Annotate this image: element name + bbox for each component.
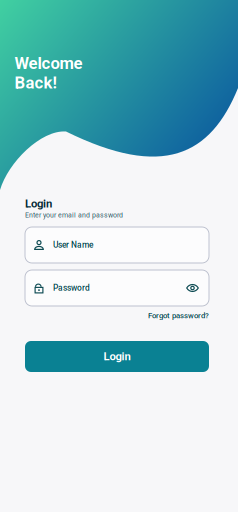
button[interactable]: Show password bbox=[186, 284, 199, 292]
staticText: User Name bbox=[53, 240, 93, 250]
staticText: Password bbox=[53, 283, 90, 293]
staticText: Forgot password? bbox=[148, 311, 209, 320]
staticText: Login bbox=[25, 197, 52, 210]
staticText: Enter your email and password bbox=[25, 211, 123, 219]
button[interactable]: Login bbox=[25, 341, 209, 372]
staticText: Login bbox=[103, 350, 130, 363]
staticText: Back! bbox=[14, 73, 57, 92]
staticText: Welcome bbox=[14, 53, 82, 73]
button[interactable]: Forgot password? bbox=[25, 311, 209, 320]
